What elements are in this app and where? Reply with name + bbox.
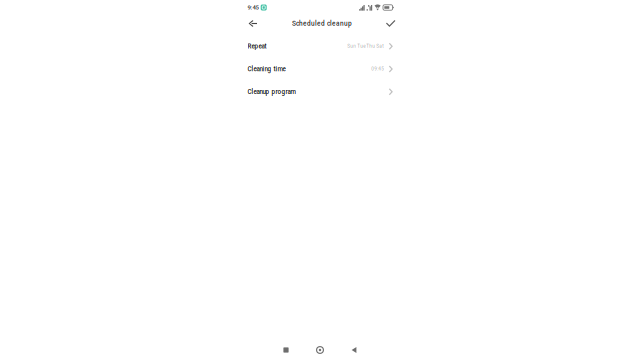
staticText: Repeat xyxy=(247,43,266,50)
button[interactable]: Recent apps xyxy=(280,344,292,356)
staticText: Sun Tue Thu Sat xyxy=(347,43,384,49)
button[interactable]: Confirm xyxy=(382,16,400,30)
button[interactable]: Back xyxy=(348,344,360,356)
staticText: 9:45 xyxy=(247,4,258,11)
button[interactable]: Cleanup program xyxy=(241,80,398,103)
staticText: 09:45 xyxy=(371,66,384,72)
staticText: Scheduled cleanup xyxy=(292,20,352,27)
button[interactable]: Repeat xyxy=(241,35,398,58)
button[interactable]: Back xyxy=(244,16,262,30)
button[interactable]: Cleaning time xyxy=(241,58,398,80)
button[interactable]: Home xyxy=(314,344,326,356)
staticText: Cleanup program xyxy=(247,88,295,95)
staticText: Cleaning time xyxy=(247,65,285,73)
